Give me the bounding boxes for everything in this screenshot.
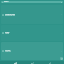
button[interactable]: Add [60, 57, 63, 60]
staticText: Open now [5, 51, 11, 53]
staticText: Nearby [5, 49, 11, 51]
staticText: Morning brief [5, 13, 15, 15]
button[interactable]: Search [1, 1, 63, 3]
button[interactable]: Nearby [1, 42, 63, 60]
staticText: You [49, 63, 51, 64]
button[interactable]: Home [13, 62, 18, 64]
button[interactable]: Feed [30, 62, 35, 64]
button[interactable]: Morning brief [1, 5, 63, 24]
staticText: Search [4, 1, 61, 3]
staticText: 3 items [5, 33, 10, 35]
button[interactable]: You [48, 62, 52, 64]
staticText: Feed [31, 63, 34, 64]
staticText: Home [14, 63, 17, 64]
staticText: Today [5, 31, 10, 33]
button[interactable]: Today [1, 25, 63, 41]
staticText: Updated just now [5, 15, 15, 17]
